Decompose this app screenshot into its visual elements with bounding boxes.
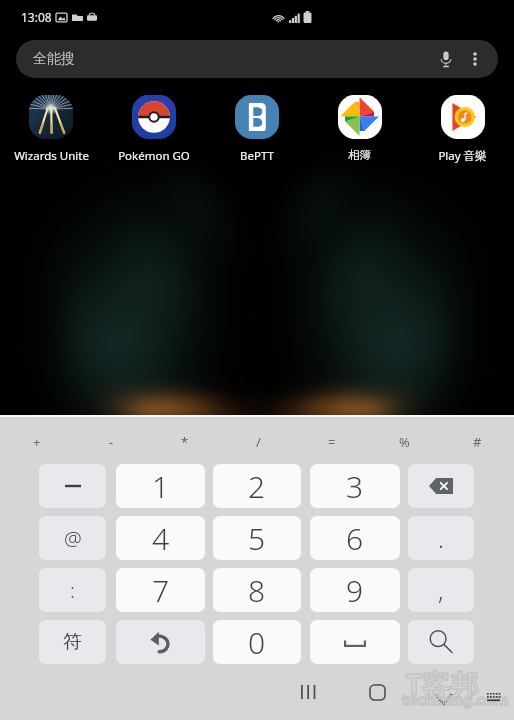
button[interactable]: 符 <box>39 620 106 664</box>
button[interactable]: . <box>408 516 474 560</box>
button[interactable]: 8 <box>213 568 301 612</box>
staticText: 5 <box>248 518 266 559</box>
staticText: 4 <box>152 518 170 559</box>
button[interactable]: Play 音樂 <box>411 95 514 164</box>
staticText: Pokémon GO <box>118 148 190 164</box>
staticText: Play 音樂 <box>438 148 487 164</box>
button[interactable]: * <box>148 429 222 455</box>
staticText: 7 <box>152 570 170 611</box>
button[interactable]: 0 <box>213 620 301 664</box>
button[interactable]: @ <box>39 516 106 560</box>
staticText: techbang.com <box>402 689 509 709</box>
staticText: # <box>473 433 482 451</box>
staticText: + <box>33 433 41 451</box>
staticText: 3 <box>346 466 364 507</box>
staticText: 全能搜 <box>33 50 75 68</box>
button[interactable] <box>408 620 474 664</box>
button[interactable]: 全能搜 <box>16 40 498 78</box>
staticText: T客邦 <box>406 665 479 703</box>
button[interactable]: + <box>0 429 74 455</box>
staticText: 相簿 <box>348 148 371 162</box>
button[interactable]: = <box>295 429 368 455</box>
button[interactable]: 2 <box>213 464 301 508</box>
staticText: 2 <box>248 466 266 507</box>
button[interactable]: / <box>222 429 295 455</box>
button[interactable]: 3 <box>310 464 400 508</box>
staticText: 符 <box>63 630 82 654</box>
button[interactable]: 9 <box>310 568 400 612</box>
button[interactable] <box>408 464 474 508</box>
staticText: . <box>438 522 444 555</box>
button[interactable]: Hide keyboard <box>429 685 457 713</box>
staticText: 0 <box>248 622 266 663</box>
button[interactable]: Wizards Unite <box>0 95 102 164</box>
button[interactable] <box>116 620 205 664</box>
staticText: 8 <box>248 570 266 611</box>
staticText: @ <box>64 525 82 552</box>
button[interactable] <box>39 464 106 508</box>
button[interactable]: Voice search <box>440 50 452 68</box>
staticText: BePTT <box>240 148 274 164</box>
button[interactable]: 相簿 <box>308 95 411 162</box>
button[interactable]: 4 <box>116 516 205 560</box>
staticText: / <box>256 433 261 451</box>
button[interactable]: - <box>74 429 148 455</box>
button[interactable]: 6 <box>310 516 400 560</box>
staticText: = <box>328 433 336 451</box>
staticText: Wizards Unite <box>14 148 89 164</box>
button[interactable]: : <box>39 568 106 612</box>
staticText: 9 <box>346 570 364 611</box>
staticText: 1 <box>152 466 170 507</box>
staticText: * <box>181 433 189 451</box>
staticText: % <box>399 433 410 451</box>
button[interactable]: BePTT <box>205 95 308 164</box>
staticText: 6 <box>346 518 364 559</box>
staticText: : <box>70 577 75 604</box>
button[interactable]: Home <box>363 678 391 706</box>
staticText: - <box>109 433 114 451</box>
button[interactable]: More options <box>468 50 482 68</box>
button[interactable] <box>310 620 400 664</box>
staticText: , <box>438 574 444 607</box>
button[interactable]: % <box>368 429 441 455</box>
staticText: 13:08 <box>21 9 52 25</box>
button[interactable]: , <box>408 568 474 612</box>
button[interactable]: 7 <box>116 568 205 612</box>
button[interactable]: # <box>441 429 514 455</box>
button[interactable]: Pokémon GO <box>102 95 205 164</box>
button[interactable]: Recent apps <box>294 678 322 706</box>
button[interactable]: 1 <box>116 464 205 508</box>
button[interactable]: 5 <box>213 516 301 560</box>
